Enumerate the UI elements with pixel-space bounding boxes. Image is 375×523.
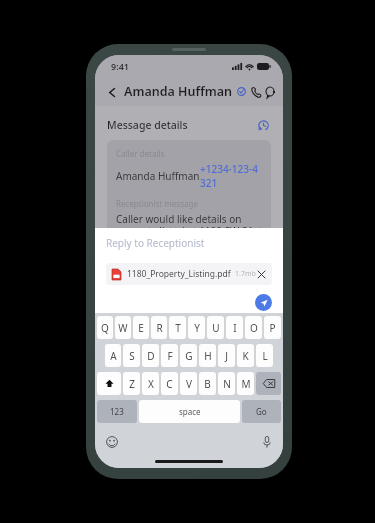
staticText: U <box>212 321 220 335</box>
button[interactable]: G <box>180 344 197 367</box>
button[interactable]: 1180_Property_Listing.pdf <box>106 263 272 285</box>
staticText: C <box>166 377 173 391</box>
button[interactable]: Chat <box>266 82 274 102</box>
button[interactable]: R <box>151 316 167 339</box>
staticText: F <box>167 349 173 363</box>
button[interactable]: L <box>256 344 273 367</box>
button[interactable]: Remove attachment <box>256 268 266 280</box>
staticText: 1180_Property_Listing.pdf <box>127 268 231 280</box>
button[interactable]: Shift <box>97 372 121 395</box>
button[interactable]: N <box>218 372 235 395</box>
staticText: 123 <box>110 406 124 417</box>
staticText: G <box>185 349 193 363</box>
staticText: 1.7mb <box>235 269 256 279</box>
button[interactable]: Emoji <box>105 435 118 448</box>
button[interactable]: Send <box>255 294 272 311</box>
staticText: I <box>233 321 237 335</box>
button[interactable]: H <box>199 344 216 367</box>
button[interactable]: 123 <box>97 400 137 423</box>
staticText: L <box>262 349 268 363</box>
staticText: Message details <box>107 118 188 132</box>
staticText: Reply to Receptionist <box>106 236 205 250</box>
staticText: N <box>223 377 231 391</box>
button[interactable]: S <box>123 344 140 367</box>
button[interactable]: space <box>139 400 240 423</box>
staticText: B <box>204 377 211 391</box>
button[interactable]: P <box>264 316 281 339</box>
button[interactable]: C <box>161 372 178 395</box>
staticText: A <box>110 349 117 363</box>
staticText: Amanda Huffman <box>124 83 233 100</box>
button[interactable]: F <box>161 344 178 367</box>
button[interactable]: M <box>237 372 254 395</box>
button[interactable]: J <box>218 344 235 367</box>
button[interactable]: W <box>115 316 131 339</box>
button[interactable]: Go <box>242 400 281 423</box>
button[interactable]: B <box>199 372 216 395</box>
button[interactable]: U <box>207 316 224 339</box>
staticText: K <box>242 349 249 363</box>
staticText: R <box>156 321 163 335</box>
staticText: X <box>148 377 154 391</box>
button[interactable]: A <box>105 344 121 367</box>
button[interactable]: Dictate <box>260 435 273 448</box>
staticText: P <box>269 321 276 335</box>
button[interactable]: V <box>180 372 197 395</box>
staticText: H <box>204 349 212 363</box>
staticText: E <box>138 321 144 335</box>
staticText: J <box>225 349 228 363</box>
button[interactable]: O <box>245 316 262 339</box>
button[interactable]: +1234-123-4321 <box>200 162 262 190</box>
staticText: Go <box>256 406 267 417</box>
staticText: W <box>118 321 128 335</box>
staticText: Q <box>101 321 109 335</box>
button[interactable]: Y <box>188 316 205 339</box>
staticText: Receptionist message <box>116 198 198 209</box>
button[interactable]: Q <box>97 316 113 339</box>
button[interactable]: History <box>255 117 271 133</box>
button[interactable]: Z <box>123 372 140 395</box>
staticText: Z <box>129 377 135 391</box>
staticText: space <box>179 406 201 417</box>
staticText: 9:41 <box>111 60 129 72</box>
button[interactable]: K <box>237 344 254 367</box>
button[interactable]: D <box>142 344 159 367</box>
button[interactable]: Call <box>246 82 266 102</box>
staticText: D <box>147 349 155 363</box>
button[interactable]: T <box>169 316 186 339</box>
button[interactable]: E <box>133 316 149 339</box>
button[interactable]: X <box>142 372 159 395</box>
button[interactable]: Back <box>104 84 120 100</box>
staticText: O <box>250 321 258 335</box>
staticText: V <box>186 377 192 391</box>
staticText: Y <box>194 321 200 335</box>
button[interactable]: I <box>226 316 243 339</box>
staticText: Caller would like details on property li… <box>116 212 262 251</box>
button[interactable]: Backspace <box>256 372 281 395</box>
staticText: S <box>129 349 135 363</box>
staticText: M <box>241 377 251 391</box>
staticText: Caller details <box>116 148 165 159</box>
staticText: Amanda Huffman <box>116 169 200 183</box>
staticText: T <box>175 321 181 335</box>
